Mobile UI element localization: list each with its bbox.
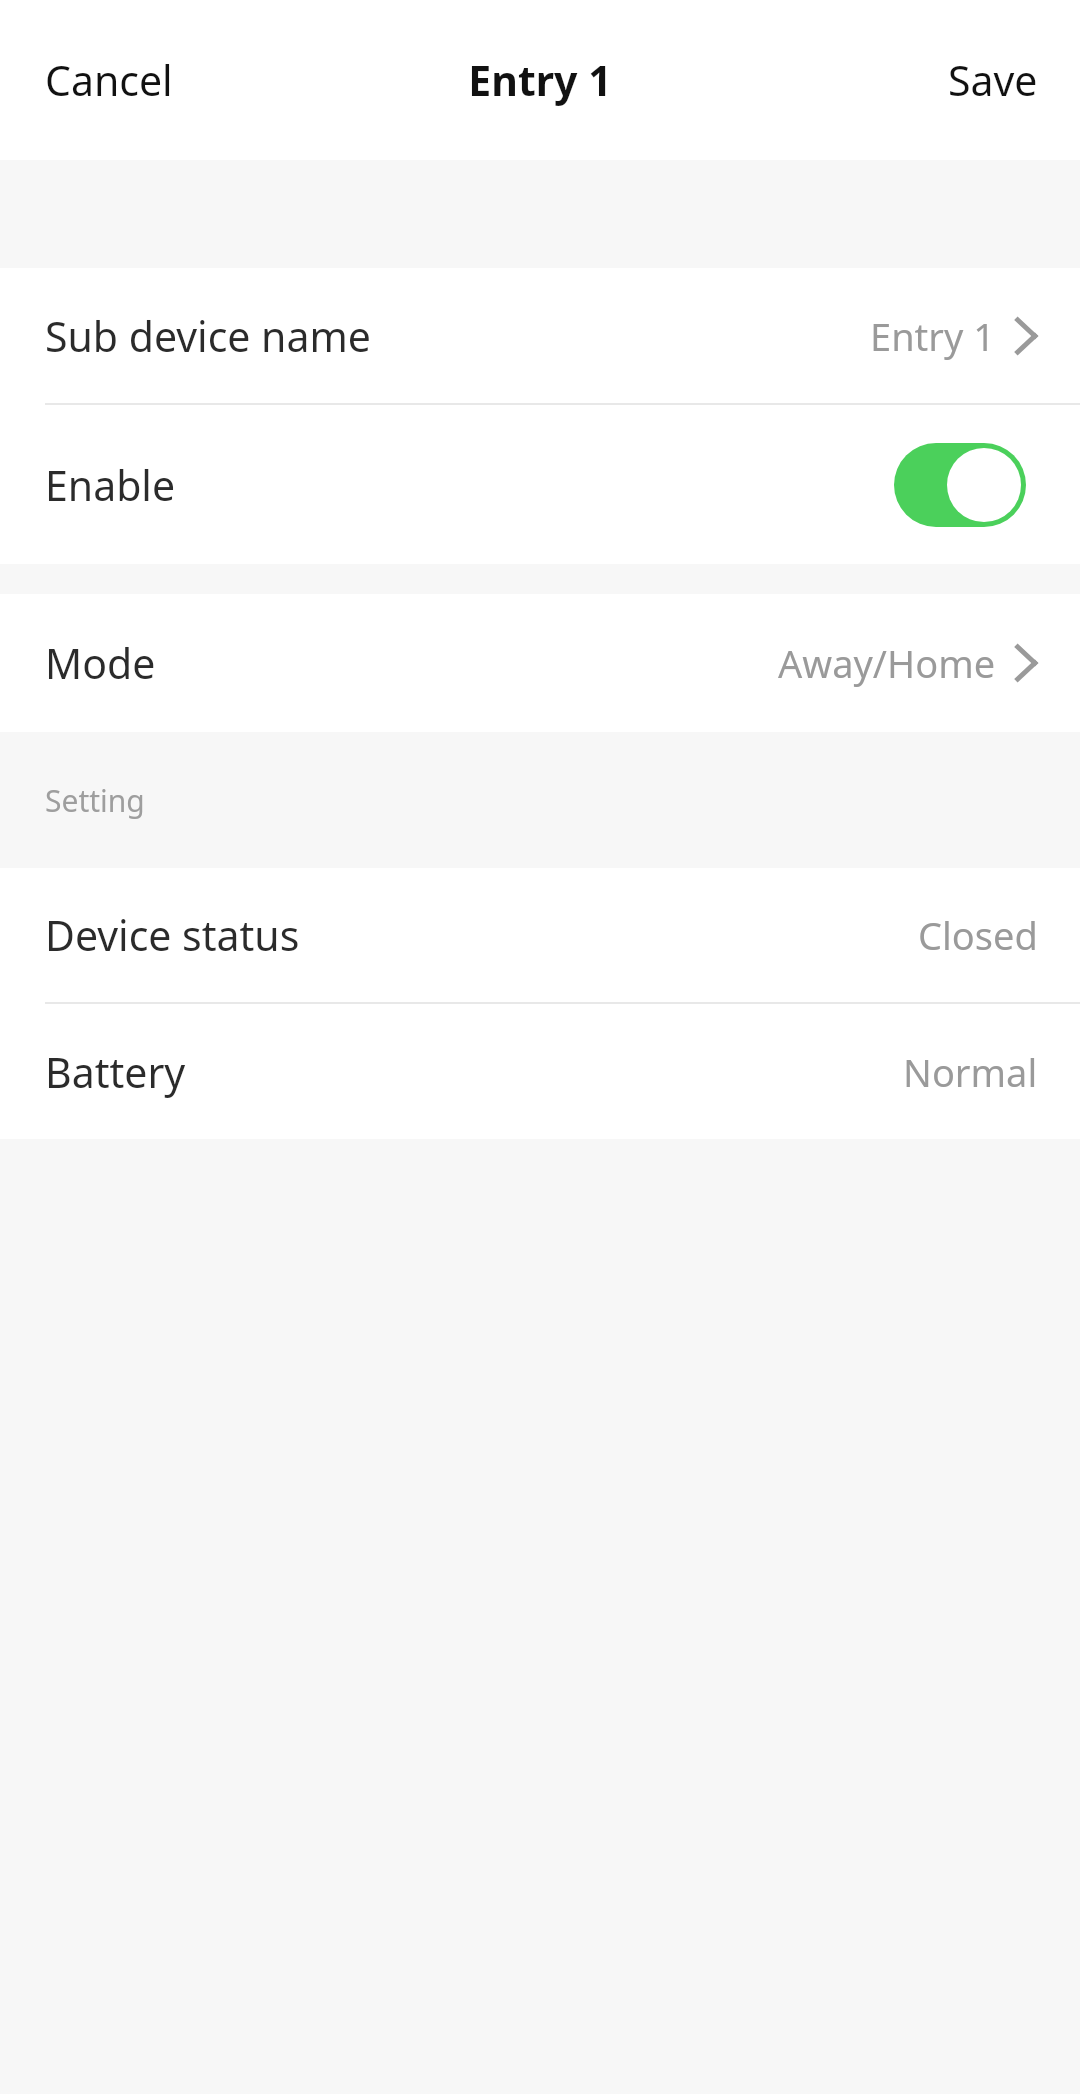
staticText: Entry 1 <box>468 52 612 108</box>
staticText: Setting <box>45 780 145 821</box>
button[interactable]: Battery <box>0 1004 1080 1139</box>
button[interactable]: Device status <box>0 868 1080 1002</box>
staticText: Save <box>948 52 1038 108</box>
other: Open <box>1012 316 1038 356</box>
staticText: Away/Home <box>778 637 996 689</box>
staticText: Normal <box>903 1046 1038 1098</box>
button[interactable]: Mode <box>0 594 1080 732</box>
staticText: Closed <box>918 909 1038 961</box>
staticText: Battery <box>45 1044 186 1100</box>
staticText: Entry 1 <box>870 310 996 362</box>
button[interactable]: Enable <box>0 405 1080 564</box>
staticText: Enable <box>45 457 176 513</box>
other: Open <box>1012 643 1038 683</box>
button[interactable]: Enable toggle <box>894 443 1026 527</box>
button[interactable]: Save <box>933 32 1053 128</box>
staticText: Sub device name <box>45 308 371 364</box>
button[interactable]: Sub device name <box>0 268 1080 403</box>
button[interactable]: Cancel <box>30 32 188 128</box>
staticText: Mode <box>45 635 156 691</box>
staticText: Device status <box>45 907 300 963</box>
staticText: Cancel <box>45 52 173 108</box>
